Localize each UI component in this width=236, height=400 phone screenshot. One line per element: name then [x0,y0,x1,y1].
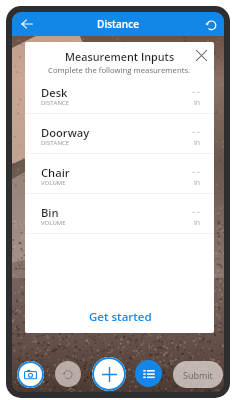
button[interactable]: Bin [25,194,214,234]
staticText: Get started [89,309,152,325]
staticText: Complete the following measurements. [48,65,191,76]
button[interactable]: Add measurement [92,357,126,391]
staticText: in [194,98,201,108]
staticText: - - [192,86,200,98]
button[interactable]: Back [16,13,38,35]
staticText: VOLUME [41,219,66,227]
staticText: - - [192,166,200,178]
button[interactable]: Undo [55,361,81,387]
staticText: VOLUME [41,179,66,187]
staticText: Measurement Inputs [65,49,175,64]
button[interactable]: Desk [25,74,214,114]
button[interactable]: Submit [173,361,223,388]
staticText: Desk [41,85,68,100]
staticText: Chair [41,165,70,180]
button[interactable]: Close [191,45,211,65]
staticText: Submit [183,369,213,381]
staticText: in [194,178,201,188]
staticText: DISTANCE [41,99,70,107]
staticText: - - [192,206,200,218]
button[interactable]: Get started [25,299,214,333]
button[interactable]: Measurement list [135,360,162,387]
button[interactable]: Camera [17,361,44,388]
staticText: in [194,138,201,148]
staticText: Doorway [41,125,90,140]
staticText: Bin [41,205,59,220]
staticText: in [194,218,201,228]
button[interactable]: Doorway [25,114,214,154]
staticText: - - [192,126,200,138]
staticText: DISTANCE [41,139,70,147]
button[interactable]: Chair [25,154,214,194]
staticText: Distance [97,17,139,31]
button[interactable]: Reset [200,13,222,35]
